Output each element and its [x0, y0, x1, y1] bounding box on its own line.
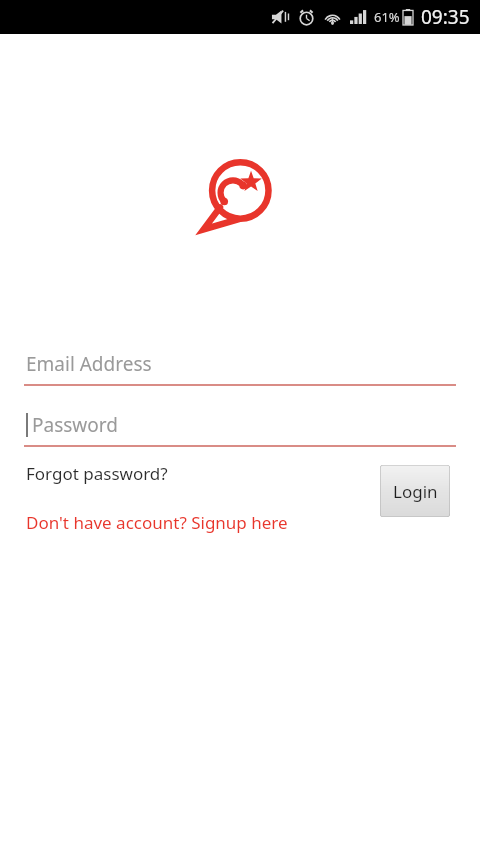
staticText: Forgot password?	[26, 462, 168, 485]
button[interactable]: Password	[0, 409, 480, 447]
staticText: Don't have account? Signup here	[26, 511, 288, 534]
button[interactable]: Email Address	[0, 348, 480, 386]
staticText: Login	[393, 480, 438, 503]
button[interactable]: Don't have account? Signup here	[26, 508, 288, 537]
staticText: 61%	[374, 8, 400, 26]
staticText: Email Address	[26, 351, 152, 377]
staticText: 09:35	[421, 4, 470, 30]
button[interactable]: Login	[380, 465, 450, 517]
button[interactable]: Forgot password?	[26, 459, 168, 488]
staticText: Password	[32, 412, 118, 438]
